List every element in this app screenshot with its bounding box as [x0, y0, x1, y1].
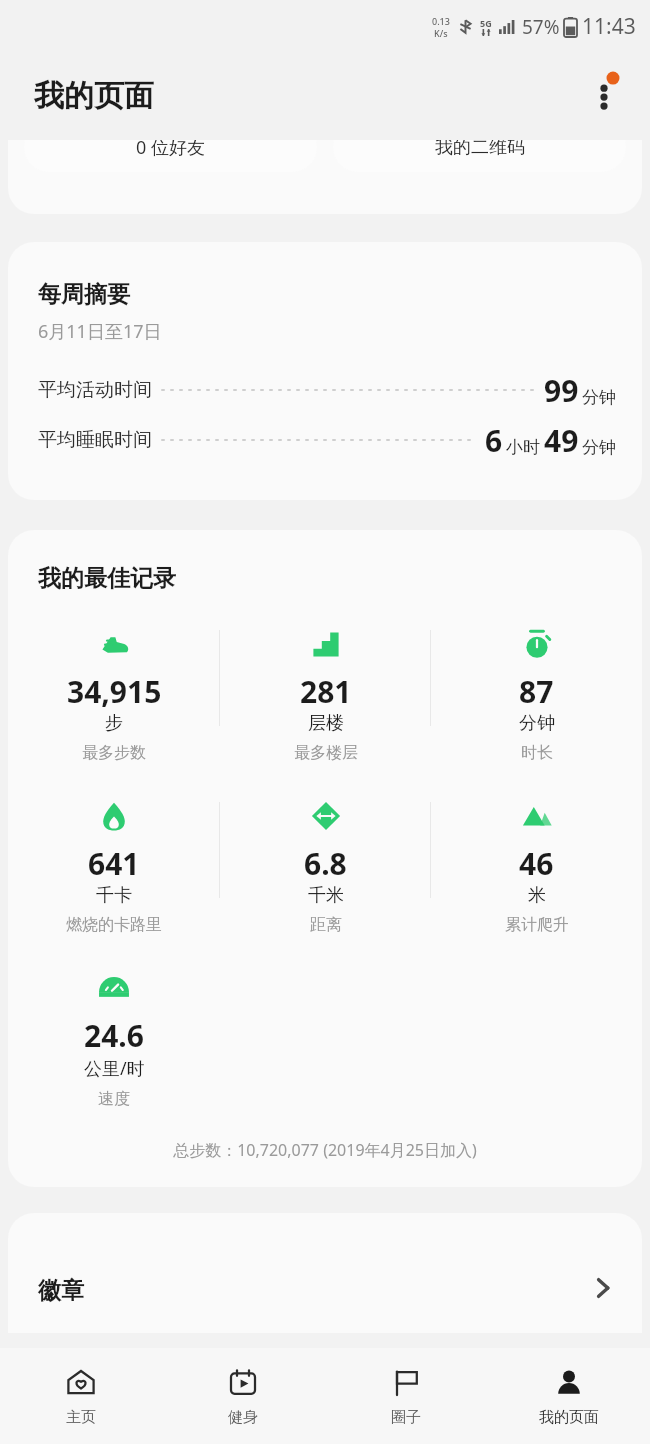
staticText: 层楼 [308, 712, 344, 735]
staticText: 圈子 [391, 1408, 421, 1427]
staticText: 641 [88, 843, 140, 884]
staticText: 公里/时 [84, 1056, 145, 1081]
button[interactable]: 徽章 [8, 1213, 642, 1333]
staticText: 距离 [310, 915, 342, 935]
staticText: 最多楼层 [294, 743, 358, 763]
staticText: 57% [522, 14, 560, 40]
staticText: 徽章 [38, 1276, 84, 1305]
button[interactable]: 每周摘要 [8, 242, 642, 500]
button[interactable]: 641 [8, 791, 220, 941]
staticText: 健身 [228, 1408, 258, 1427]
staticText: 我的页面 [34, 77, 154, 115]
staticText: 平均活动时间 [38, 378, 152, 402]
staticText: 5G [480, 17, 492, 29]
staticText: 11:43 [582, 12, 636, 41]
staticText: 99 [544, 370, 579, 410]
button[interactable]: 0 位好友 [24, 140, 317, 172]
staticText: 分钟 [582, 387, 616, 408]
button[interactable]: 我的页面 [487, 1348, 650, 1444]
staticText: 燃烧的卡路里 [66, 915, 162, 935]
button[interactable]: More options [576, 68, 632, 124]
staticText: 千米 [308, 884, 344, 907]
staticText: 24.6 [84, 1015, 144, 1056]
staticText: 34,915 [67, 671, 162, 712]
staticText: 平均睡眠时间 [38, 428, 152, 452]
staticText: 0.13 [432, 15, 450, 27]
staticText: 6 [485, 420, 503, 460]
staticText: 时长 [521, 743, 553, 763]
staticText: 米 [528, 884, 546, 907]
staticText: 最多步数 [82, 743, 146, 763]
staticText: 小时 [506, 437, 540, 458]
staticText: 0 位好友 [136, 140, 205, 160]
staticText: 46 [519, 843, 554, 884]
staticText: K/s [434, 27, 448, 39]
staticText: 我的最佳记录 [38, 564, 176, 593]
button[interactable]: 健身 [162, 1348, 324, 1444]
staticText: 我的页面 [539, 1408, 599, 1427]
button[interactable]: 46 [431, 791, 642, 941]
button[interactable]: 6.8 [220, 791, 431, 941]
staticText: 分钟 [582, 437, 616, 458]
staticText: 每周摘要 [38, 280, 130, 309]
button[interactable]: 24.6 [8, 963, 220, 1113]
button[interactable]: 圈子 [324, 1348, 487, 1444]
staticText: 分钟 [519, 712, 555, 735]
staticText: 281 [300, 671, 352, 712]
staticText: 累计爬升 [505, 915, 569, 935]
button[interactable]: 主页 [0, 1348, 162, 1444]
staticText: 速度 [98, 1089, 130, 1109]
staticText: 总步数：10,720,077 (2019年4月25日加入) [8, 1139, 642, 1161]
button[interactable]: 281 [220, 619, 431, 769]
button[interactable]: 我的二维码 [333, 140, 626, 172]
button[interactable]: 34,915 [8, 619, 220, 769]
staticText: 6.8 [304, 843, 347, 884]
staticText: 千卡 [96, 884, 132, 907]
staticText: 87 [519, 671, 554, 712]
staticText: 步 [105, 712, 123, 735]
staticText: 我的二维码 [435, 140, 525, 159]
staticText: 49 [544, 420, 579, 460]
button[interactable]: 87 [431, 619, 642, 769]
staticText: 主页 [66, 1408, 96, 1427]
staticText: 6月11日至17日 [38, 319, 162, 344]
